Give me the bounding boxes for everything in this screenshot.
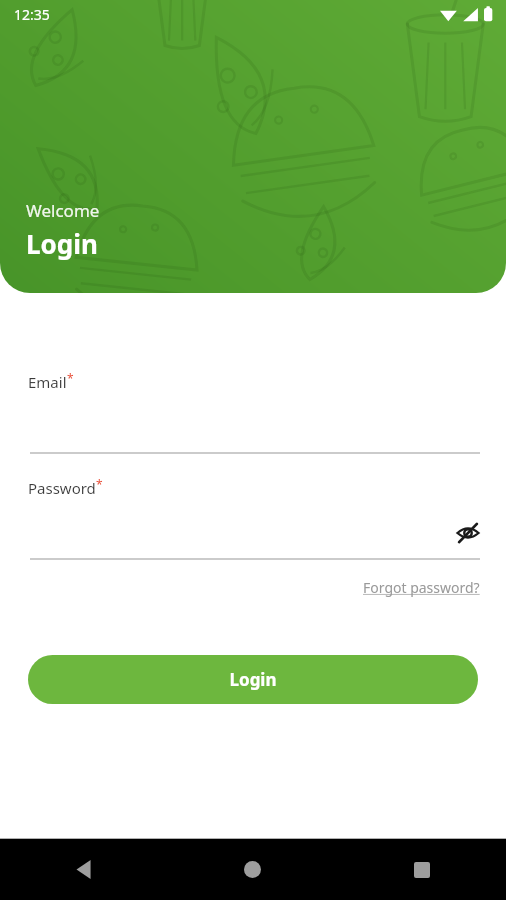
staticText: 12:35 [14,5,50,24]
staticText: Welcome [26,199,100,222]
button[interactable]: Home [168,839,337,900]
staticText: Forgot password? [363,578,480,597]
staticText: * [67,370,74,386]
staticText: Email [28,372,67,392]
staticText: Password [28,478,96,498]
button[interactable]: Recent apps [337,839,506,900]
staticText: Login [229,668,277,691]
staticText: * [96,476,103,492]
button[interactable]: Back [0,839,168,900]
button[interactable]: Show password [450,515,486,551]
button[interactable] [0,392,506,454]
button[interactable]: Forgot password? [361,576,482,599]
button[interactable]: Login [28,655,478,704]
staticText: Login [26,226,98,261]
